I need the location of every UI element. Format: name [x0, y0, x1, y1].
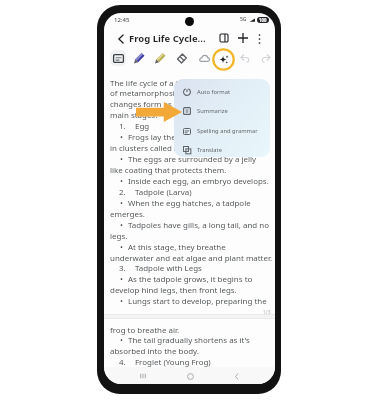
button[interactable]: Split view: [217, 31, 231, 45]
staticText: •: [120, 176, 123, 187]
button[interactable]: Text box: [110, 50, 126, 66]
button[interactable]: AI assist: [212, 48, 235, 71]
staticText: like coating that protects them.: [110, 165, 227, 176]
button[interactable]: Pen: [131, 50, 147, 66]
staticText: Lungs start to develop, preparing the: [128, 296, 267, 307]
button[interactable]: Recent apps: [135, 368, 151, 384]
button[interactable]: Undo: [237, 50, 253, 66]
button[interactable]: Eraser: [173, 50, 189, 66]
staticText: underwater and eat algae and plant matte…: [110, 253, 273, 264]
staticText: Frog Life Cycle...: [129, 32, 206, 45]
staticText: of metamorphosis, where an animal: [110, 88, 245, 99]
button[interactable]: Spelling and grammar: [174, 124, 270, 138]
staticText: legs.: [110, 231, 128, 242]
staticText: 5G: [240, 16, 247, 23]
staticText: develop hind legs, then front legs.: [110, 285, 237, 296]
staticText: Frogs lay their eggs in water, often: [128, 132, 257, 143]
staticText: 3.: [119, 263, 126, 274]
button[interactable]: Auto format: [174, 85, 270, 99]
staticText: •: [120, 296, 123, 307]
staticText: •: [120, 274, 123, 285]
staticText: main stages:: [110, 110, 158, 121]
staticText: 2.: [119, 187, 126, 198]
staticText: 1.: [119, 121, 126, 132]
button[interactable]: Redo: [258, 50, 274, 66]
staticText: 1/3: [263, 309, 271, 316]
staticText: •: [120, 132, 123, 143]
staticText: The eggs are surrounded by a jelly: [128, 154, 257, 165]
staticText: emerges.: [110, 209, 145, 220]
staticText: Auto format: [197, 88, 231, 96]
staticText: •: [120, 242, 123, 253]
staticText: When the egg hatches, a tadpole: [128, 198, 251, 209]
staticText: Summarize: [197, 107, 228, 115]
staticText: changes form as it grows. It has four: [110, 99, 247, 110]
button[interactable]: Home: [182, 368, 198, 384]
staticText: •: [120, 335, 123, 346]
staticText: Tadpole with Legs: [135, 263, 202, 274]
staticText: frog to breathe air.: [110, 325, 180, 336]
staticText: As the tadpole grows, it begins to: [128, 274, 253, 285]
staticText: Egg: [135, 121, 150, 132]
staticText: Tadpole (Larva): [135, 187, 192, 198]
staticText: 100: [259, 17, 267, 23]
staticText: Froglet (Young Frog): [135, 357, 211, 368]
staticText: 4.: [119, 357, 126, 368]
staticText: The life cycle of a frog is a great exam…: [110, 78, 262, 89]
staticText: in clusters called frogspawn.: [110, 143, 216, 154]
staticText: •: [120, 220, 123, 231]
staticText: •: [120, 198, 123, 209]
button[interactable]: Back: [114, 32, 127, 45]
staticText: •: [120, 154, 123, 165]
button[interactable]: More options: [253, 32, 266, 45]
staticText: At this stage, they breathe: [128, 242, 226, 253]
button[interactable]: Summarize: [174, 104, 270, 118]
staticText: The tail gradually shortens as it's: [128, 335, 250, 346]
staticText: Inside each egg, an embryo develops.: [128, 176, 269, 187]
button[interactable]: Translate: [174, 143, 270, 157]
button[interactable]: Add: [236, 31, 250, 45]
staticText: absorbed into the body.: [110, 346, 199, 357]
staticText: Translate: [197, 146, 222, 154]
button[interactable]: Shapes: [196, 50, 212, 66]
staticText: Tadpoles have gills, a long tail, and no: [128, 220, 269, 231]
button[interactable]: Highlighter: [152, 50, 168, 66]
button[interactable]: Back: [228, 368, 244, 384]
staticText: 12:45: [114, 16, 130, 24]
staticText: Spelling and grammar: [197, 127, 258, 135]
